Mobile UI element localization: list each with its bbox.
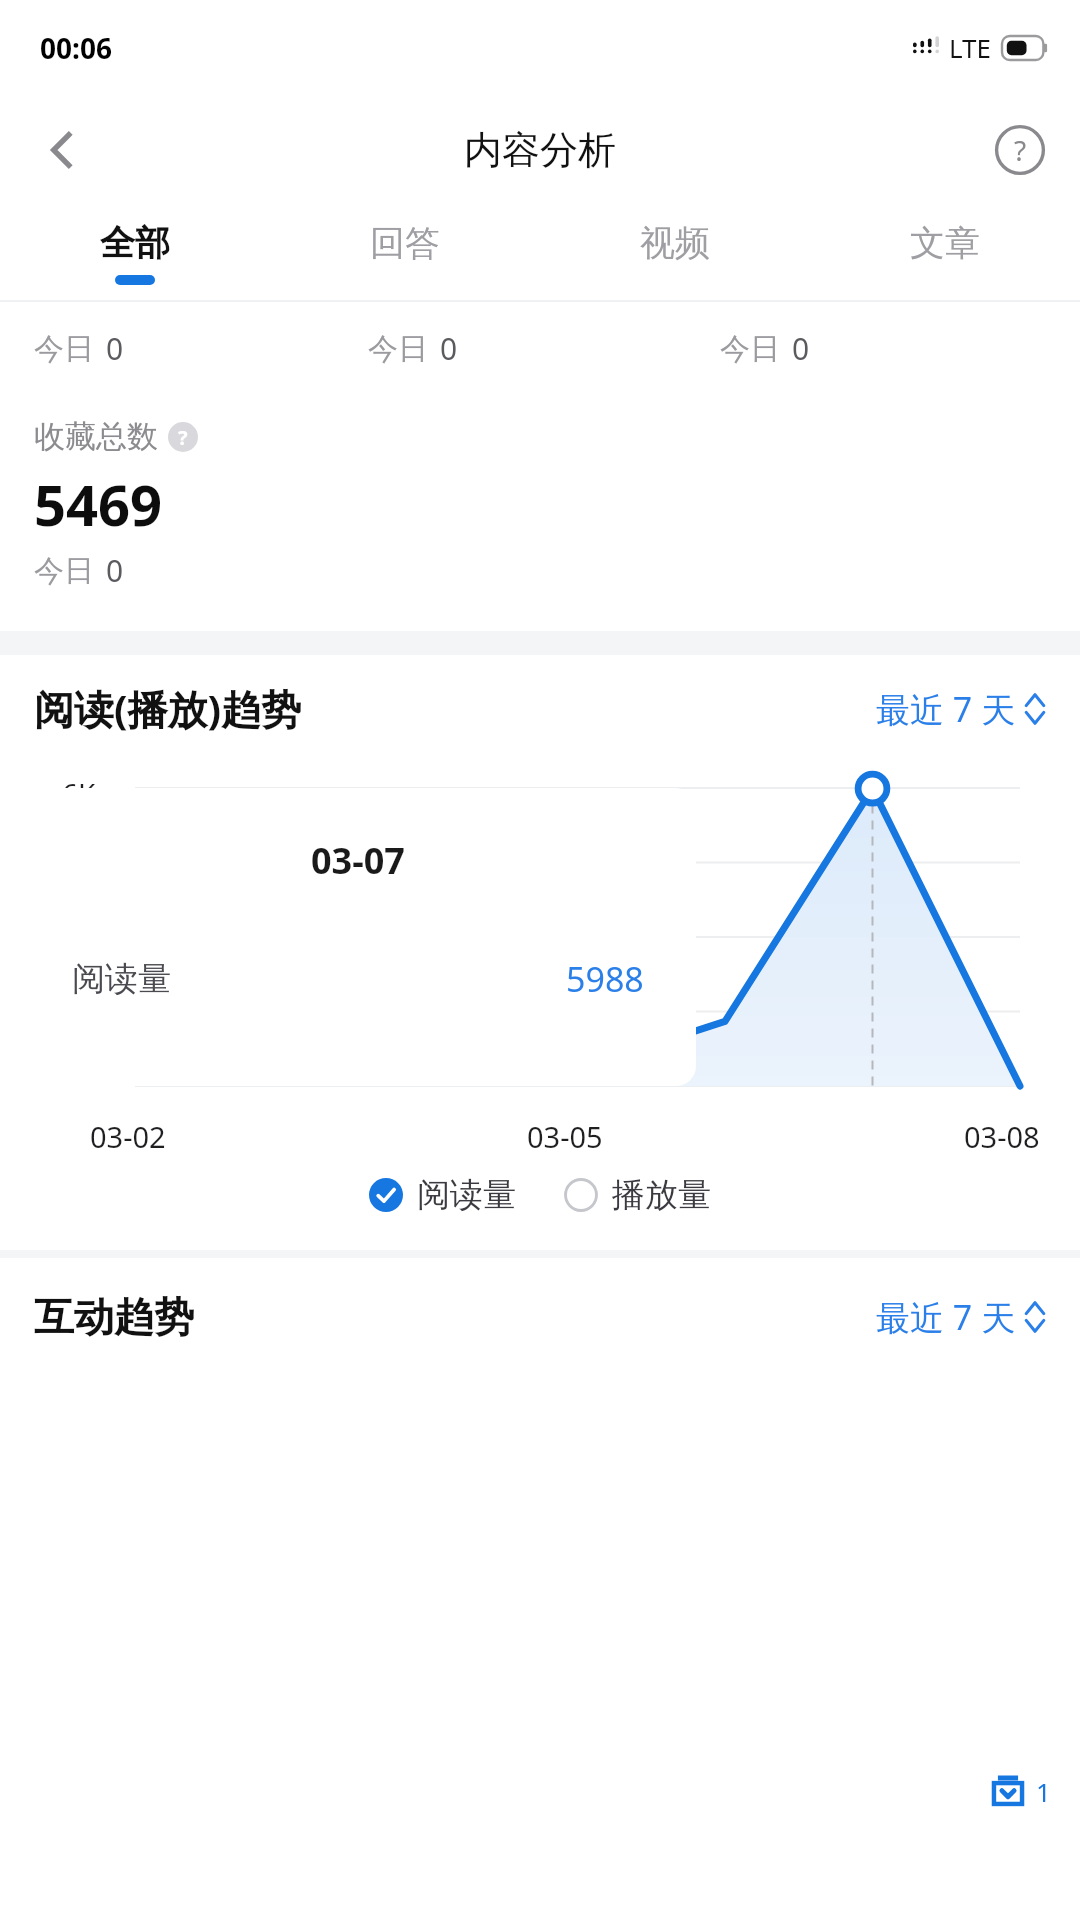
staticText: ? bbox=[178, 424, 188, 451]
button[interactable]: Back bbox=[22, 110, 102, 190]
staticText: 0 bbox=[106, 328, 124, 369]
staticText: 内容分析 bbox=[464, 126, 616, 174]
staticText: 阅读量 bbox=[417, 1174, 516, 1216]
staticText: 0 bbox=[792, 328, 810, 369]
staticText: 阅读量 bbox=[72, 958, 171, 1000]
staticText: 视频 bbox=[640, 221, 710, 265]
staticText: 03-05 bbox=[527, 1117, 603, 1156]
staticText: 今日 bbox=[34, 552, 94, 590]
button[interactable]: 最近 7 天 bbox=[876, 1294, 1046, 1340]
staticText: 全部 bbox=[100, 221, 170, 265]
button[interactable]: Inbox 1 bbox=[960, 1748, 1080, 1834]
staticText: 6K bbox=[62, 774, 96, 812]
staticText: 播放量 bbox=[612, 1174, 711, 1216]
button[interactable]: 阅读量 bbox=[369, 1174, 516, 1216]
button[interactable]: 播放量 bbox=[564, 1174, 711, 1216]
staticText: 最近 7 天 bbox=[876, 686, 1016, 732]
button[interactable]: Help bbox=[980, 110, 1060, 190]
staticText: 03-07 bbox=[311, 836, 405, 885]
staticText: LTE bbox=[949, 30, 992, 65]
staticText: 0 bbox=[440, 328, 458, 369]
staticText: 5988 bbox=[566, 956, 644, 1002]
staticText: 今日 bbox=[720, 330, 780, 368]
staticText: 文章 bbox=[910, 221, 980, 265]
staticText: 03-02 bbox=[90, 1117, 166, 1156]
staticText: 5469 bbox=[34, 466, 163, 542]
button[interactable]: 回答 bbox=[270, 205, 540, 300]
staticText: 0 bbox=[106, 550, 124, 591]
staticText: 1 bbox=[1036, 1774, 1051, 1809]
staticText: 回答 bbox=[370, 221, 440, 265]
button[interactable]: 视频 bbox=[540, 205, 810, 300]
staticText: 收藏总数 bbox=[34, 417, 158, 456]
button[interactable]: 全部 bbox=[0, 205, 270, 300]
staticText: 00:06 bbox=[40, 29, 112, 67]
staticText: ? bbox=[1014, 131, 1027, 169]
button[interactable]: 最近 7 天 bbox=[876, 686, 1046, 732]
button[interactable]: Info bbox=[168, 422, 198, 452]
staticText: 互动趋势 bbox=[34, 1292, 194, 1342]
staticText: 1.5K bbox=[39, 980, 96, 1018]
staticText: 最近 7 天 bbox=[876, 1294, 1016, 1340]
button[interactable]: 文章 bbox=[810, 205, 1080, 300]
staticText: 03-08 bbox=[964, 1117, 1040, 1156]
staticText: 今日 bbox=[34, 330, 94, 368]
staticText: 今日 bbox=[368, 330, 428, 368]
staticText: 阅读(播放)趋势 bbox=[34, 681, 302, 736]
